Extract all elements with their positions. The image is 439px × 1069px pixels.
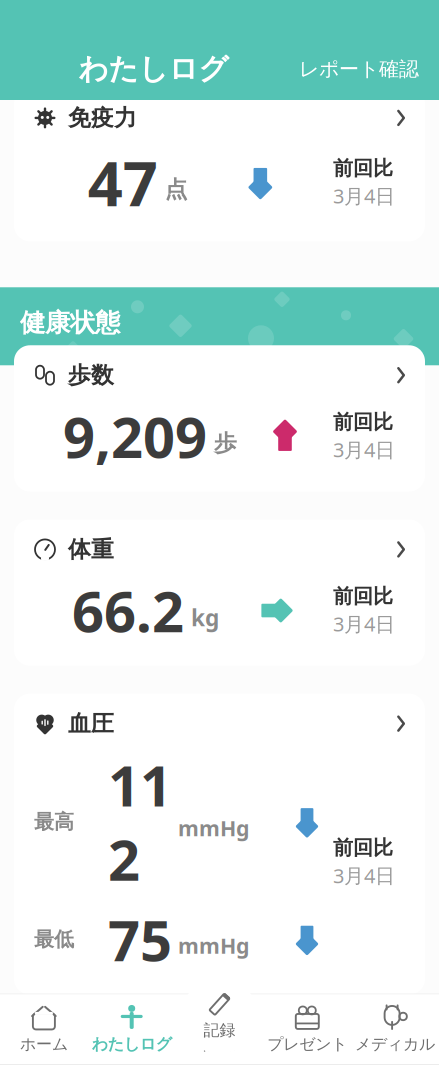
staticText: 3月4日: [333, 862, 395, 889]
staticText: 血圧: [68, 710, 114, 737]
button[interactable]: 体重: [14, 519, 425, 666]
staticText: 記録: [203, 1020, 235, 1040]
button[interactable]: わたしログ: [88, 994, 176, 1064]
staticText: 点: [165, 176, 188, 203]
staticText: レポート確認: [299, 57, 419, 81]
button[interactable]: 記録: [176, 994, 263, 1064]
button[interactable]: 記録: [181, 978, 257, 1054]
button[interactable]: 歩数: [14, 345, 425, 491]
staticText: 3月4日: [333, 436, 395, 463]
staticText: 9,209: [63, 399, 207, 473]
staticText: 前回比: [333, 410, 393, 434]
staticText: プレゼント: [267, 1034, 347, 1054]
staticText: mmHg: [178, 931, 249, 960]
staticText: ホーム: [20, 1034, 68, 1054]
button[interactable]: 免疫力: [14, 88, 425, 241]
button[interactable]: プレゼント: [263, 994, 351, 1064]
staticText: mmHg: [178, 814, 249, 842]
button[interactable]: メディカル: [351, 994, 439, 1064]
staticText: 3月4日: [333, 183, 395, 209]
staticText: メディカル: [355, 1034, 435, 1054]
staticText: 健康状態: [20, 307, 120, 338]
staticText: 歩数: [68, 361, 114, 389]
staticText: kg: [191, 602, 219, 633]
staticText: 最低: [34, 927, 74, 952]
staticText: 記録: [203, 1034, 235, 1054]
staticText: 75: [108, 902, 172, 977]
staticText: わたしログ: [92, 1034, 172, 1054]
staticText: 免疫力: [68, 104, 137, 132]
staticText: 前回比: [333, 156, 393, 181]
staticText: 前回比: [333, 835, 393, 860]
button[interactable]: 血圧: [14, 694, 425, 995]
staticText: わたしログ: [78, 51, 228, 87]
staticText: 3月4日: [333, 610, 395, 637]
button[interactable]: ホーム: [0, 994, 88, 1064]
staticText: 体重: [68, 535, 114, 563]
staticText: 歩: [214, 429, 237, 457]
staticText: 66.2: [72, 573, 184, 648]
staticText: 前回比: [333, 584, 393, 609]
staticText: 112: [108, 747, 172, 896]
staticText: 最高: [34, 810, 74, 834]
staticText: 47: [88, 142, 158, 223]
button[interactable]: レポート確認: [293, 51, 425, 87]
